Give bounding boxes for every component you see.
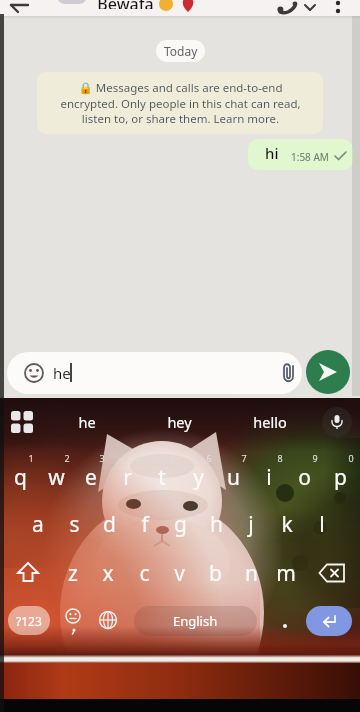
- staticText: d: [103, 510, 116, 539]
- button[interactable]: [278, 618, 292, 634]
- staticText: e: [85, 463, 97, 492]
- staticText: r: [123, 463, 132, 492]
- staticText: English: [173, 612, 218, 630]
- button[interactable]: u: [216, 462, 250, 492]
- button[interactable]: [306, 606, 352, 636]
- staticText: t: [158, 463, 166, 492]
- staticText: u: [227, 463, 240, 492]
- staticText: 8: [277, 452, 283, 464]
- button[interactable]: b: [198, 558, 232, 588]
- button[interactable]: a: [21, 509, 55, 539]
- button[interactable]: [62, 608, 84, 636]
- button[interactable]: [98, 610, 118, 630]
- button[interactable]: e: [74, 462, 108, 492]
- staticText: h: [210, 510, 223, 539]
- button[interactable]: o: [287, 462, 321, 492]
- button[interactable]: [14, 560, 42, 586]
- button[interactable]: hello: [240, 410, 300, 434]
- staticText: o: [298, 463, 311, 492]
- staticText: hi: [265, 143, 279, 163]
- button[interactable]: [279, 362, 299, 384]
- button[interactable]: r: [110, 462, 144, 492]
- staticText: s: [69, 510, 80, 539]
- staticText: ?123: [16, 613, 42, 629]
- staticText: 6: [206, 452, 212, 464]
- button[interactable]: [8, 0, 30, 16]
- staticText: q: [14, 463, 27, 492]
- staticText: 3: [99, 452, 105, 464]
- staticText: hello: [253, 412, 287, 432]
- staticText: y: [193, 463, 204, 492]
- button[interactable]: i: [252, 462, 286, 492]
- button[interactable]: j: [234, 509, 268, 539]
- button[interactable]: [330, 0, 346, 16]
- button[interactable]: [57, 0, 87, 4]
- button[interactable]: p: [323, 462, 357, 492]
- staticText: 1: [28, 452, 34, 464]
- button[interactable]: English: [134, 606, 257, 636]
- button[interactable]: Bewafa: [90, 0, 160, 9]
- staticText: c: [139, 559, 150, 588]
- button[interactable]: h: [199, 509, 233, 539]
- staticText: he: [78, 412, 96, 432]
- button[interactable]: z: [56, 558, 90, 588]
- button[interactable]: f: [128, 509, 162, 539]
- button[interactable]: l: [305, 509, 339, 539]
- staticText: Today: [164, 43, 198, 59]
- staticText: m: [276, 559, 296, 588]
- staticText: a: [32, 510, 44, 539]
- staticText: g: [174, 510, 187, 539]
- button[interactable]: [318, 562, 348, 586]
- button[interactable]: m: [269, 558, 303, 588]
- button[interactable]: [322, 407, 352, 437]
- staticText: he: [53, 363, 71, 383]
- button[interactable]: [306, 350, 350, 394]
- staticText: j: [248, 510, 254, 539]
- staticText: 7: [241, 452, 247, 464]
- button[interactable]: hey: [149, 410, 209, 434]
- staticText: v: [174, 559, 185, 588]
- staticText: p: [334, 463, 347, 492]
- button[interactable]: hi: [248, 139, 353, 170]
- staticText: 5: [170, 452, 176, 464]
- staticText: 9: [312, 452, 318, 464]
- button[interactable]: [10, 410, 34, 434]
- staticText: b: [209, 559, 222, 588]
- staticText: n: [245, 559, 258, 588]
- button[interactable]: n: [234, 558, 268, 588]
- button[interactable]: s: [57, 509, 91, 539]
- staticText: hey: [167, 412, 192, 432]
- button[interactable]: k: [270, 509, 304, 539]
- button[interactable]: ?123: [8, 606, 50, 635]
- button[interactable]: c: [127, 558, 161, 588]
- staticText: f: [141, 510, 149, 539]
- staticText: 2: [64, 452, 70, 464]
- staticText: 4: [135, 452, 141, 464]
- staticText: Bewafa: [97, 0, 154, 9]
- staticText: z: [68, 559, 78, 588]
- staticText: x: [102, 559, 114, 588]
- button[interactable]: he: [7, 352, 302, 394]
- staticText: 1:58 AM: [291, 150, 329, 164]
- button[interactable]: 🔒 Messages and calls are end-to-end encr…: [37, 72, 323, 134]
- staticText: w: [48, 463, 65, 492]
- button[interactable]: y: [181, 462, 215, 492]
- button[interactable]: d: [92, 509, 126, 539]
- staticText: i: [266, 463, 272, 492]
- staticText: 🔒 Messages and calls are end-to-end encr…: [60, 80, 301, 126]
- button[interactable]: [277, 0, 299, 15]
- button[interactable]: q: [3, 462, 37, 492]
- staticText: l: [319, 510, 325, 539]
- button[interactable]: t: [145, 462, 179, 492]
- button[interactable]: w: [39, 462, 73, 492]
- button[interactable]: g: [163, 509, 197, 539]
- staticText: k: [281, 510, 293, 539]
- button[interactable]: he: [57, 410, 117, 434]
- button[interactable]: v: [162, 558, 196, 588]
- staticText: 0: [348, 452, 354, 464]
- button[interactable]: x: [91, 558, 125, 588]
